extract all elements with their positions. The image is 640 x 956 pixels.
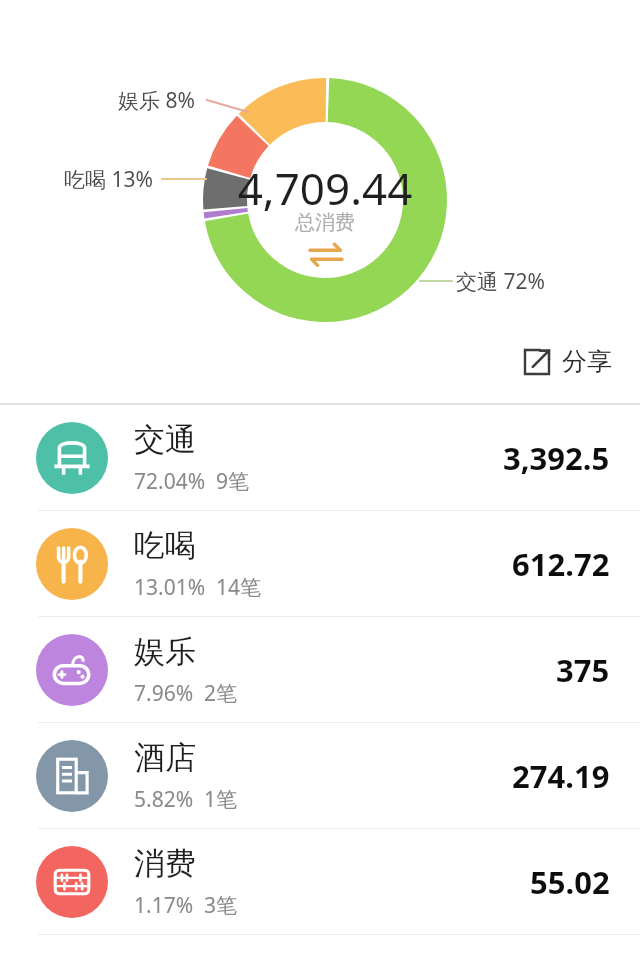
staticText: 14笔: [216, 573, 262, 602]
staticText: 娱乐: [134, 632, 196, 671]
staticText: 55.02: [530, 861, 610, 903]
button[interactable]: 交通: [0, 405, 640, 510]
staticText: 1.17%: [134, 891, 194, 920]
staticText: 13.01%: [134, 573, 206, 602]
staticText: 72.04%: [134, 467, 206, 496]
staticText: 总消费: [225, 210, 425, 235]
staticText: 3笔: [204, 891, 238, 920]
staticText: 1笔: [204, 785, 238, 814]
staticText: 消费: [134, 844, 196, 883]
staticText: 5.82%: [134, 785, 194, 814]
staticText: 612.72: [512, 543, 610, 585]
staticText: 375: [556, 649, 610, 691]
staticText: 274.19: [512, 755, 610, 797]
staticText: 9笔: [216, 467, 250, 496]
staticText: 娱乐 8%: [118, 86, 195, 115]
button[interactable]: 分享: [518, 342, 616, 381]
staticText: 2笔: [204, 679, 238, 708]
staticText: 分享: [562, 346, 612, 377]
staticText: 3,392.5: [503, 437, 610, 479]
button[interactable]: 酒店: [0, 723, 640, 828]
staticText: 吃喝 13%: [64, 165, 153, 194]
button[interactable]: 吃喝: [0, 511, 640, 616]
staticText: 交通: [134, 420, 196, 459]
staticText: 7.96%: [134, 679, 194, 708]
button[interactable]: 娱乐: [0, 617, 640, 722]
button[interactable]: 消费: [0, 829, 640, 934]
staticText: 交通 72%: [456, 267, 545, 296]
staticText: 4,709.44: [225, 158, 425, 218]
staticText: 酒店: [134, 738, 196, 777]
staticText: 吃喝: [134, 526, 196, 565]
button[interactable]: Switch currency: [305, 243, 347, 267]
